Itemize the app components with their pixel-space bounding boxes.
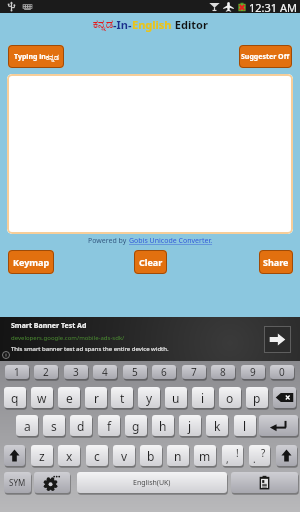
- staticText: i: [201, 390, 205, 406]
- staticText: w: [37, 390, 47, 406]
- button[interactable]: [234, 415, 256, 436]
- staticText: d: [77, 418, 85, 434]
- button[interactable]: [16, 415, 38, 436]
- button[interactable]: Backspace: [273, 387, 296, 408]
- staticText: Clear: [139, 256, 163, 268]
- button[interactable]: [194, 445, 216, 466]
- button[interactable]: Enter: [259, 415, 298, 436]
- button[interactable]: [64, 365, 88, 379]
- button[interactable]: [211, 365, 235, 379]
- button[interactable]: [206, 415, 228, 436]
- button[interactable]: Shift: [4, 445, 25, 466]
- button[interactable]: [4, 387, 26, 408]
- staticText: v: [121, 448, 128, 464]
- staticText: Keymap: [13, 256, 50, 268]
- button[interactable]: [93, 365, 117, 379]
- staticText: k: [214, 418, 221, 434]
- button[interactable]: [58, 445, 80, 466]
- staticText: r: [94, 390, 99, 406]
- staticText: Typing in: [14, 52, 46, 62]
- staticText: Editor: [172, 17, 208, 32]
- button[interactable]: [113, 445, 135, 466]
- button[interactable]: [77, 472, 227, 493]
- button[interactable]: [152, 365, 176, 379]
- staticText: ಕನ್ನಡ: [93, 19, 113, 30]
- staticText: o: [226, 390, 234, 406]
- staticText: Share: [263, 256, 289, 268]
- staticText: p: [253, 390, 261, 406]
- button[interactable]: [98, 415, 120, 436]
- button[interactable]: [125, 415, 147, 436]
- staticText: 4: [102, 365, 108, 379]
- button[interactable]: Clipboard: [231, 472, 298, 493]
- staticText: Powered by: [88, 236, 129, 246]
- staticText: j: [188, 418, 192, 434]
- button[interactable]: [86, 445, 108, 466]
- button[interactable]: Settings: [34, 472, 70, 493]
- button[interactable]: [70, 415, 92, 436]
- staticText: l: [243, 418, 247, 434]
- button[interactable]: [31, 445, 53, 466]
- button[interactable]: [246, 387, 268, 408]
- button[interactable]: [111, 387, 133, 408]
- staticText: u: [172, 390, 180, 406]
- button[interactable]: [182, 365, 206, 379]
- button[interactable]: [123, 365, 147, 379]
- button[interactable]: . ?: [249, 445, 270, 466]
- staticText: ?: [261, 446, 266, 460]
- staticText: This smart banner test ad spans the enti…: [11, 345, 169, 353]
- button[interactable]: [270, 365, 294, 379]
- staticText: y: [146, 390, 153, 406]
- button[interactable]: [85, 387, 107, 408]
- button[interactable]: [5, 365, 29, 379]
- button[interactable]: Shift right: [276, 445, 297, 466]
- staticText: c: [94, 448, 100, 464]
- button[interactable]: [7, 74, 293, 234]
- staticText: x: [66, 448, 73, 464]
- button[interactable]: [219, 387, 241, 408]
- button[interactable]: Keymap: [8, 250, 54, 274]
- staticText: f: [107, 418, 112, 434]
- button[interactable]: [34, 365, 58, 379]
- button[interactable]: Open ad: [264, 326, 291, 353]
- button[interactable]: [241, 365, 265, 379]
- button[interactable]: [165, 387, 187, 408]
- staticText: 1: [14, 365, 20, 379]
- staticText: t: [120, 390, 125, 406]
- button[interactable]: [58, 387, 80, 408]
- button[interactable]: [167, 445, 189, 466]
- staticText: Smart Banner Test Ad: [11, 321, 87, 331]
- button[interactable]: Gobis Unicode Converter.: [129, 236, 213, 246]
- staticText: SYM: [9, 477, 26, 488]
- staticText: Suggester Off: [241, 52, 290, 62]
- staticText: .: [253, 452, 256, 466]
- staticText: English(UK): [133, 478, 171, 488]
- button[interactable]: Suggester Off: [239, 45, 292, 68]
- staticText: m: [199, 448, 211, 464]
- button[interactable]: , !: [222, 445, 243, 466]
- staticText: -In-: [113, 17, 132, 32]
- button[interactable]: [31, 387, 53, 408]
- button[interactable]: Clear: [134, 250, 167, 274]
- staticText: 2: [43, 365, 49, 379]
- staticText: 6: [161, 365, 167, 379]
- staticText: h: [159, 418, 167, 434]
- button[interactable]: [140, 445, 162, 466]
- button[interactable]: Typing in: [8, 45, 64, 68]
- button[interactable]: [138, 387, 160, 408]
- button[interactable]: [43, 415, 65, 436]
- staticText: s: [51, 418, 57, 434]
- staticText: 9: [250, 365, 256, 379]
- staticText: ಕನ್ನಡ: [46, 54, 59, 61]
- staticText: a: [24, 418, 31, 434]
- staticText: !: [236, 446, 239, 460]
- button[interactable]: [4, 472, 31, 493]
- button[interactable]: [152, 415, 174, 436]
- staticText: 7: [191, 365, 197, 379]
- staticText: 3: [73, 365, 79, 379]
- staticText: q: [11, 390, 19, 406]
- button[interactable]: [179, 415, 201, 436]
- button[interactable]: [192, 387, 214, 408]
- staticText: z: [39, 448, 45, 464]
- button[interactable]: Share: [259, 250, 293, 274]
